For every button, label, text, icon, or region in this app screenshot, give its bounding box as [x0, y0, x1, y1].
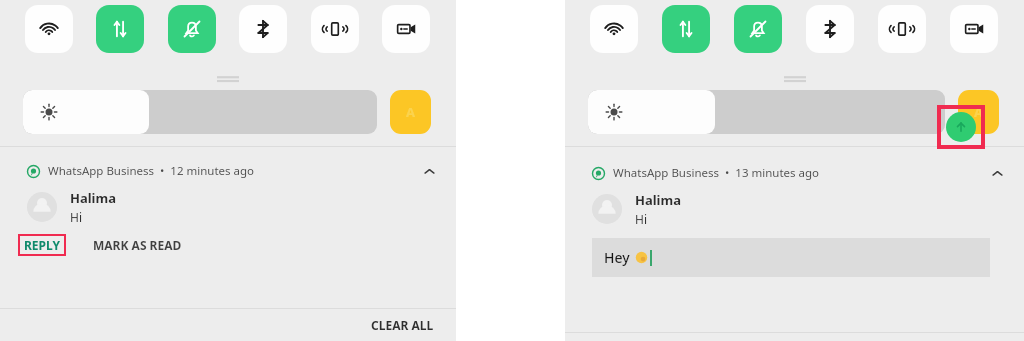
- button[interactable]: Do not disturb: [168, 5, 216, 53]
- button[interactable]: Do not disturb: [734, 5, 782, 53]
- button[interactable]: Wi-Fi: [590, 5, 638, 53]
- staticText: Hi: [635, 211, 647, 227]
- button[interactable]: Auto brightness: [390, 90, 431, 134]
- button[interactable]: Vibrate: [878, 5, 926, 53]
- staticText: Halima: [70, 189, 116, 207]
- button[interactable]: Bluetooth: [239, 5, 287, 53]
- button[interactable]: REPLY: [18, 234, 66, 256]
- button[interactable]: Screen record: [382, 5, 430, 53]
- staticText: Halima: [635, 191, 681, 209]
- button[interactable]: Hey: [592, 238, 990, 277]
- button[interactable]: Wi-Fi: [25, 5, 73, 53]
- staticText: MARK AS READ: [93, 237, 182, 253]
- button[interactable]: MARK AS READ: [89, 234, 186, 256]
- button[interactable]: Vibrate: [311, 5, 359, 53]
- button[interactable]: [23, 90, 377, 134]
- staticText: Hi: [70, 209, 82, 225]
- button[interactable]: Screen record: [950, 5, 998, 53]
- button[interactable]: CLEAR ALL: [349, 312, 456, 338]
- button[interactable]: WhatsApp Business • 13 minutes ago: [592, 165, 1004, 181]
- staticText: WhatsApp Business • 12 minutes ago: [48, 163, 255, 179]
- button[interactable]: [588, 90, 945, 134]
- button[interactable]: Bluetooth: [806, 5, 854, 53]
- staticText: A: [406, 103, 415, 121]
- button[interactable]: Send: [946, 112, 976, 142]
- staticText: CLEAR ALL: [371, 317, 434, 333]
- staticText: Hey: [604, 248, 630, 267]
- staticText: A: [974, 103, 983, 121]
- button[interactable]: Mobile data: [662, 5, 710, 53]
- staticText: WhatsApp Business • 13 minutes ago: [613, 165, 820, 181]
- button[interactable]: WhatsApp Business • 12 minutes ago: [27, 163, 436, 179]
- staticText: REPLY: [24, 237, 60, 253]
- button[interactable]: Mobile data: [96, 5, 144, 53]
- button[interactable]: Auto brightness: [958, 90, 999, 134]
